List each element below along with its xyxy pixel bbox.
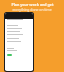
staticText: Plan your week and get: [11, 2, 54, 7]
staticText: everything done on time: [12, 7, 52, 12]
